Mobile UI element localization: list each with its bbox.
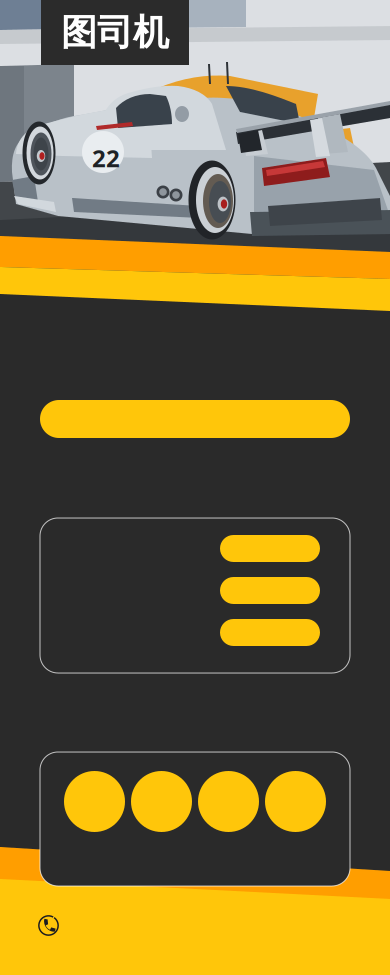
button[interactable]: Option 4 bbox=[265, 771, 326, 832]
button[interactable]: Option 1 bbox=[64, 771, 125, 832]
button[interactable]: Action 3 bbox=[220, 619, 320, 646]
button[interactable] bbox=[40, 400, 350, 438]
button[interactable]: Action 2 bbox=[220, 577, 320, 604]
staticText: 22 bbox=[92, 142, 120, 174]
button[interactable]: Option 3 bbox=[198, 771, 259, 832]
button[interactable]: Option 2 bbox=[131, 771, 192, 832]
button[interactable]: Action 1 bbox=[220, 535, 320, 562]
staticText: 图司机 bbox=[61, 10, 169, 55]
button[interactable]: 图司机 bbox=[41, 0, 189, 65]
button[interactable]: Call bbox=[37, 914, 61, 938]
